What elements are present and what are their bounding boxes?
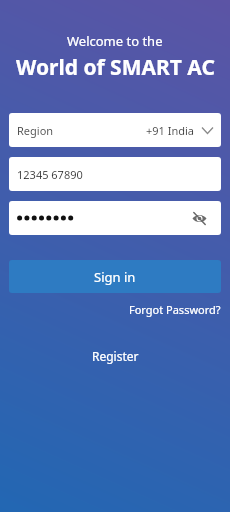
staticText: World of SMART AC — [16, 53, 215, 82]
button[interactable]: Forgot Password? — [129, 302, 221, 317]
staticText: 12345 67890 — [17, 167, 83, 182]
button[interactable]: Sign in — [9, 260, 221, 293]
staticText: Sign in — [94, 268, 136, 286]
staticText: Forgot Password? — [129, 302, 221, 317]
button[interactable]: Region — [9, 113, 221, 147]
staticText: Region — [17, 123, 54, 138]
staticText: +91 India — [146, 123, 195, 138]
staticText: Register — [92, 348, 139, 364]
button[interactable]: 12345 67890 — [9, 157, 221, 191]
button[interactable]: Register — [92, 348, 139, 364]
button[interactable] — [9, 201, 221, 235]
staticText: Welcome to the — [67, 32, 163, 50]
